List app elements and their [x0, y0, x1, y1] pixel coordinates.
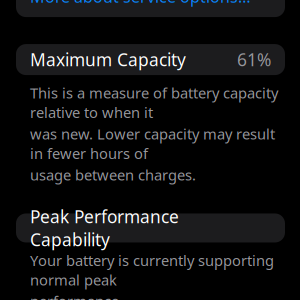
staticText: was new. Lower capacity may result in fe…: [30, 124, 275, 163]
staticText: Your battery is currently supporting nor…: [30, 250, 274, 289]
staticText: More about service options…: [30, 0, 251, 7]
button[interactable]: More about service options…: [16, 0, 285, 17]
staticText: Maximum Capacity: [30, 48, 186, 71]
staticText: performance.: [30, 291, 123, 300]
staticText: This is a measure of battery capacity re…: [30, 83, 278, 122]
staticText: Peak Performance Capability: [30, 205, 179, 251]
button[interactable]: Maximum Capacity: [16, 44, 285, 75]
staticText: usage between charges.: [30, 165, 196, 184]
button[interactable]: Peak Performance Capability: [16, 213, 285, 242]
staticText: 61%: [237, 48, 271, 71]
